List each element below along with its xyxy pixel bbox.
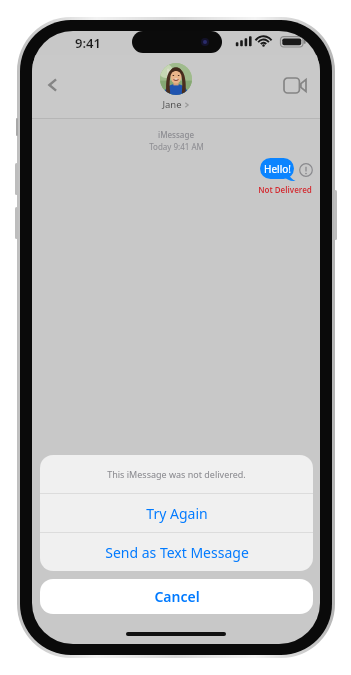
staticText: Try Again bbox=[146, 504, 208, 523]
staticText: Send as Text Message bbox=[105, 543, 249, 562]
button[interactable]: Send as Text Message bbox=[40, 533, 313, 571]
staticText: This iMessage was not delivered. bbox=[107, 468, 246, 480]
button[interactable]: Message not delivered, tap for options bbox=[297, 161, 315, 179]
staticText: Cancel bbox=[154, 587, 200, 606]
staticText: Not Delivered bbox=[258, 184, 312, 195]
button[interactable]: Jane bbox=[32, 63, 320, 111]
button[interactable]: Hello! bbox=[260, 158, 294, 179]
staticText: Jane bbox=[162, 98, 182, 111]
staticText: Today 9:41 AM bbox=[149, 141, 204, 152]
staticText: Hello! bbox=[264, 162, 291, 176]
button[interactable]: Try Again bbox=[40, 494, 313, 532]
button[interactable]: Cancel bbox=[40, 579, 313, 614]
staticText: 9:41 bbox=[75, 34, 101, 52]
button[interactable]: FaceTime video call bbox=[279, 69, 311, 101]
staticText: iMessage bbox=[158, 129, 194, 140]
button[interactable]: Back bbox=[37, 69, 69, 101]
